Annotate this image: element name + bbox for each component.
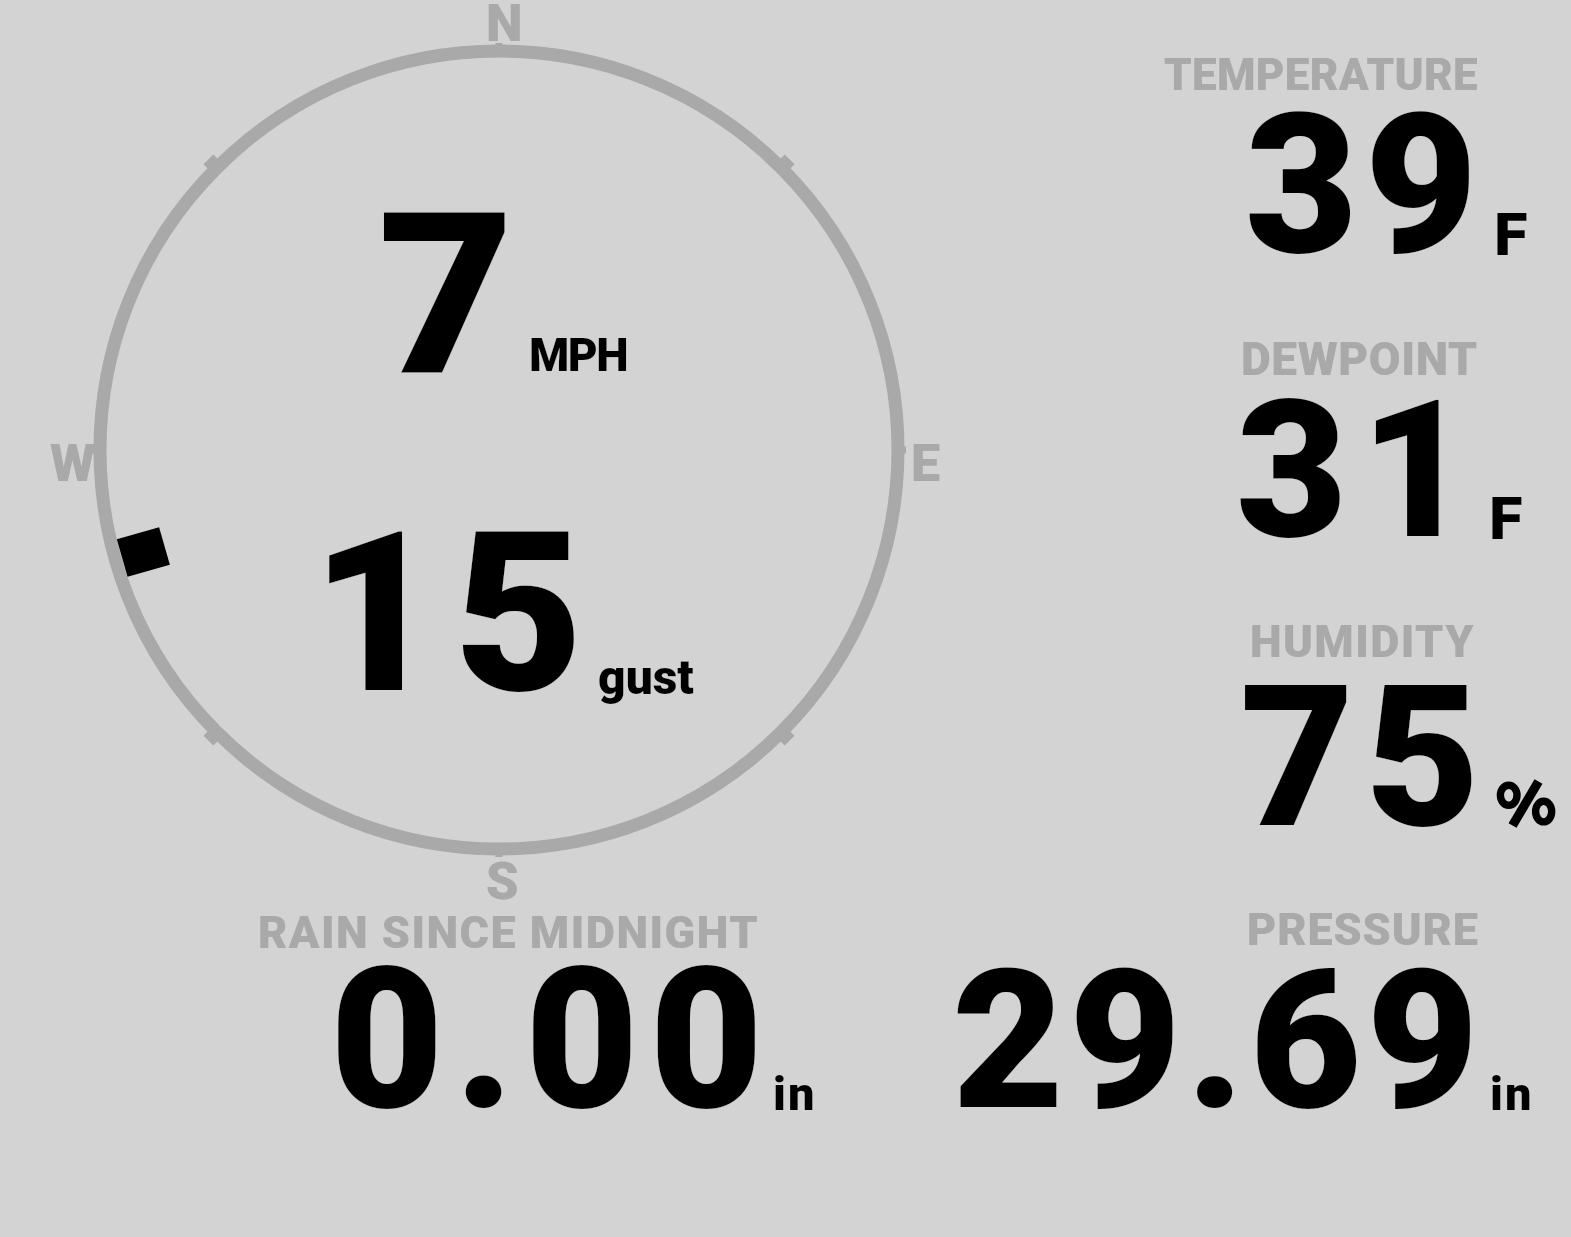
staticText: DEWPOINT [1241,332,1478,386]
staticText: 31 [1236,358,1485,583]
staticText: N [486,0,523,54]
staticText: 75 [1240,642,1491,873]
staticText: 39 [1245,71,1485,299]
button[interactable]: Dewpoint 31 degrees Fahrenheit [1140,305,1571,585]
staticText: HUMIDITY [1250,615,1475,668]
staticText: 7 [378,164,514,427]
staticText: F [1489,484,1523,553]
staticText: TEMPERATURE [1164,49,1478,101]
button[interactable]: Wind 7 miles per hour, gusting 15, from … [40,0,960,910]
staticText: PRESSURE [1247,903,1479,956]
staticText: in [1490,1066,1534,1121]
staticText: W [50,433,96,494]
staticText: F [1494,200,1528,269]
button[interactable]: Temperature 39 degrees Fahrenheit [1140,20,1571,300]
staticText: 29.69 [952,928,1484,1155]
staticText: 15 [311,483,598,744]
staticText: gust [598,649,694,705]
button[interactable]: Humidity 75 percent [1140,590,1571,870]
button[interactable]: Pressure 29.69 inches [930,880,1571,1130]
staticText: 0.00 [330,925,775,1155]
button[interactable]: Rain since midnight 0.00 inches [230,880,830,1130]
staticText: E [911,433,941,494]
staticText: in [773,1066,817,1121]
staticText: MPH [529,328,628,382]
staticText: RAIN SINCE MIDNIGHT [258,906,760,959]
staticText: S [486,851,519,912]
